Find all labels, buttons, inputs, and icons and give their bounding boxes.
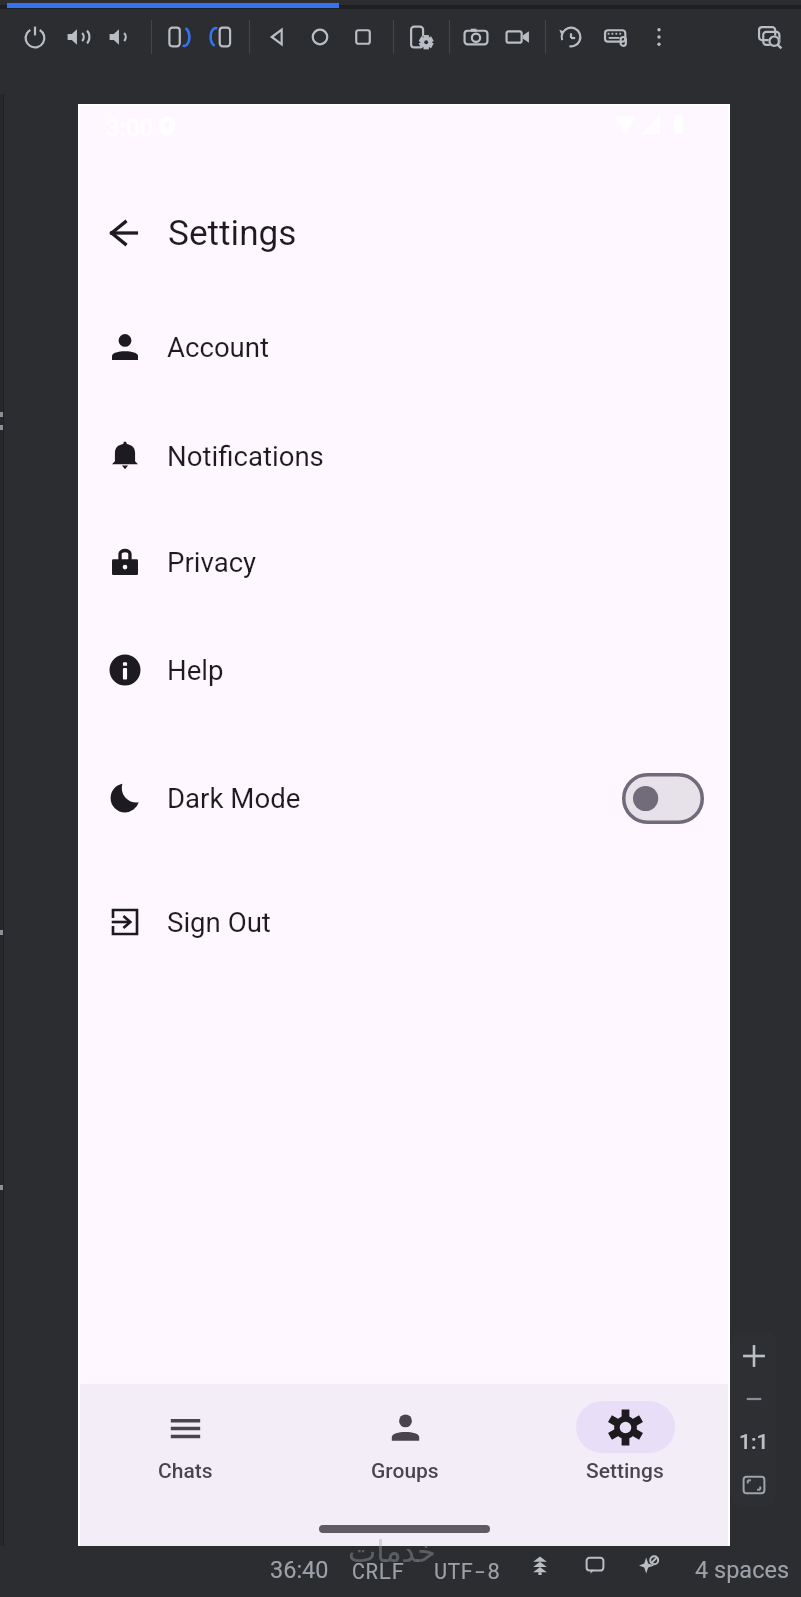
button[interactable]: Rotate right: [204, 20, 238, 54]
staticText: Notifications: [167, 440, 324, 472]
button[interactable]: Notifications: [582, 1552, 608, 1578]
button[interactable]: Inspect: [753, 20, 787, 54]
staticText: Privacy: [167, 546, 257, 578]
staticText: Dark Mode: [167, 782, 301, 814]
button[interactable]: Account: [80, 319, 728, 375]
button[interactable]: Assistant: [636, 1552, 662, 1578]
button[interactable]: Fit to screen: [731, 1467, 776, 1503]
button[interactable]: History: [554, 20, 588, 54]
staticText: Account: [167, 331, 270, 363]
button[interactable]: Back: [99, 209, 147, 257]
button[interactable]: Settings: [571, 1401, 679, 1491]
staticText: 4 spaces: [695, 1556, 790, 1584]
button[interactable]: Chats: [131, 1401, 239, 1491]
button[interactable]: Recents: [346, 20, 380, 54]
button[interactable]: Zoom in: [731, 1338, 776, 1374]
staticText: UTF-8: [434, 1556, 501, 1585]
staticText: CRLF: [352, 1556, 405, 1585]
button[interactable]: Privacy: [80, 534, 728, 590]
button[interactable]: UTF-8: [434, 1556, 501, 1585]
button[interactable]: Dark mode toggle: [622, 773, 704, 824]
button[interactable]: Help: [80, 642, 728, 698]
button[interactable]: Screenshot: [459, 20, 493, 54]
button[interactable]: CRLF: [352, 1556, 405, 1585]
button[interactable]: Version control: [527, 1552, 553, 1578]
button[interactable]: Home: [303, 20, 337, 54]
button[interactable]: Device settings: [404, 20, 438, 54]
button[interactable]: Groups: [351, 1401, 459, 1491]
button[interactable]: Volume down: [103, 20, 137, 54]
button[interactable]: Keyboard: [600, 20, 634, 54]
staticText: خدمات: [348, 1534, 436, 1569]
button[interactable]: 36:40: [270, 1556, 329, 1584]
button[interactable]: Sign Out: [80, 894, 728, 950]
button[interactable]: Zoom out: [731, 1381, 776, 1417]
button[interactable]: Notifications: [80, 428, 728, 484]
button[interactable]: 4 spaces: [695, 1556, 790, 1584]
button[interactable]: Dark Mode: [80, 762, 728, 834]
button[interactable]: More: [642, 20, 676, 54]
button[interactable]: Power: [18, 20, 52, 54]
staticText: 36:40: [270, 1556, 329, 1584]
button[interactable]: Rotate left: [162, 20, 196, 54]
staticText: Chats: [158, 1459, 213, 1484]
button[interactable]: Volume up: [61, 20, 95, 54]
button[interactable]: Back: [260, 20, 294, 54]
staticText: Settings: [168, 212, 297, 253]
staticText: Groups: [371, 1459, 439, 1484]
staticText: 1:1: [739, 1430, 769, 1455]
staticText: Sign Out: [167, 906, 271, 938]
staticText: Help: [167, 654, 224, 686]
button[interactable]: Record screen: [501, 20, 535, 54]
button[interactable]: 1:1: [731, 1424, 776, 1460]
staticText: Settings: [586, 1459, 664, 1484]
